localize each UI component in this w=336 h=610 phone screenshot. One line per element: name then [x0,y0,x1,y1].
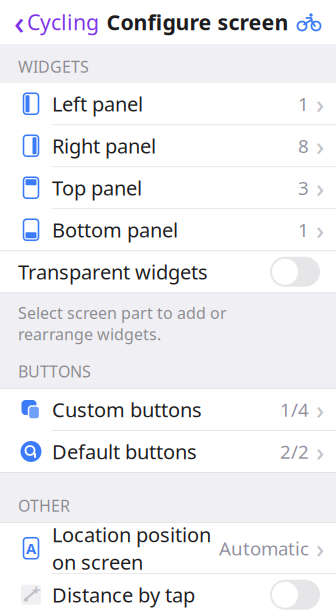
staticText: 1 [298,217,309,242]
staticText: Custom buttons [52,396,202,423]
staticText: › [316,129,324,162]
button[interactable]: A [0,523,336,573]
staticText: ‹ [14,1,24,43]
button[interactable]: Left panel [0,83,336,124]
button[interactable]: Transparent widgets [0,251,336,292]
staticText: Bottom panel [52,216,178,243]
staticText: BUTTONS [18,361,91,382]
button[interactable]: + [0,574,336,610]
button[interactable]: Cycling activity [296,7,336,37]
button[interactable]: Bottom panel [0,209,336,250]
staticText: A [26,538,36,558]
button[interactable]: Top panel [0,167,336,208]
button[interactable]: Right panel [0,125,336,166]
staticText: Right panel [52,132,156,159]
staticText: › [316,393,324,426]
staticText: Default buttons [52,438,197,465]
staticText: 1 [298,91,309,116]
button[interactable]: ‹ [0,0,99,47]
staticText: Transparent widgets [18,258,208,285]
staticText: Location position [52,521,211,548]
button[interactable]: Default buttons [0,431,336,472]
staticText: OTHER [18,495,70,516]
staticText: › [316,171,324,204]
staticText: › [316,531,324,565]
staticText: Cycling [27,8,99,36]
button[interactable]: Custom buttons [0,389,336,430]
staticText: 2/2 [280,439,309,464]
staticText: Automatic [219,536,309,561]
staticText: + [32,580,40,599]
staticText: Configure screen [106,8,288,36]
staticText: 8 [298,133,309,158]
staticText: on screen [52,549,143,575]
staticText: WIDGETS [18,56,89,77]
staticText: › [316,435,324,468]
staticText: 1/4 [280,397,309,422]
staticText: 3 [298,175,309,200]
staticText: Left panel [52,90,143,117]
staticText: Select screen part to add or rearrange w… [18,302,227,345]
staticText: › [316,87,324,120]
staticText: Distance by tap [52,581,195,608]
staticText: Top panel [52,174,142,201]
staticText: › [316,213,324,246]
